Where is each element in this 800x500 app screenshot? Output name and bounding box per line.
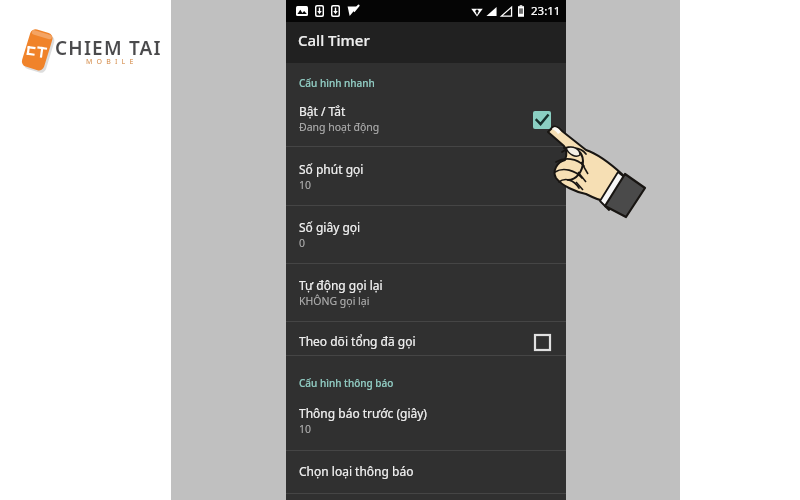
button[interactable]: Toggle on [533,111,551,129]
button[interactable]: Số giây gọi [286,206,566,263]
staticText: Call Timer [298,30,370,50]
button[interactable]: Thông báo trước (giây) [286,390,566,450]
button[interactable]: Call Timer [286,22,566,63]
staticText: Bật / Tắt [299,103,346,119]
staticText: Cấu hình nhanh [299,76,566,90]
staticText: KHÔNG gọi lại [299,294,370,308]
staticText: Số phút gọi [299,161,364,177]
staticText: Cấu hình thông báo [299,376,566,390]
staticText: Theo dõi tổng đã gọi [299,333,416,349]
button[interactable]: Chọn loại thông báo [286,451,566,493]
staticText: 10 [299,178,312,192]
button[interactable]: Theo dõi tổng đã gọi [286,322,566,355]
button[interactable]: Tự động gọi lại [286,264,566,321]
staticText: CHIEM TAI [55,35,162,61]
button[interactable]: Toggle off [535,335,550,350]
staticText: M O B I L E [86,57,135,67]
staticText: Thông báo trước (giây) [299,405,427,421]
button[interactable]: Số phút gọi [286,147,566,205]
staticText: Đang hoạt động [299,120,380,134]
staticText: 23:11 [531,3,561,19]
staticText: 10 [299,422,312,436]
staticText: Tự động gọi lại [299,277,383,293]
button[interactable]: Bật / Tắt [286,90,566,146]
staticText: 0 [299,236,306,250]
staticText: Chọn loại thông báo [299,463,414,479]
staticText: Số giây gọi [299,219,361,235]
